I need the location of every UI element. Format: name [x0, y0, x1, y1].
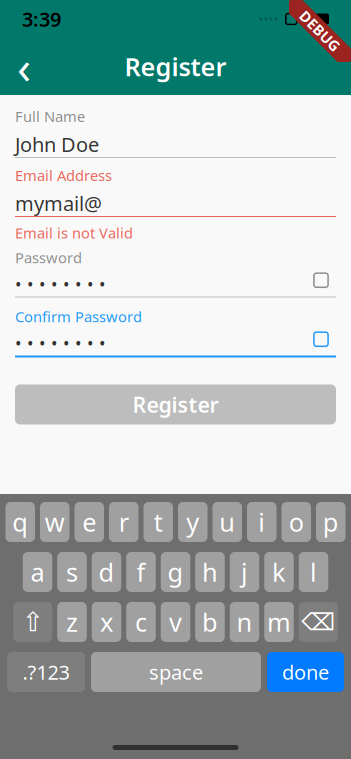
staticText: ⇧ — [22, 607, 44, 637]
staticText: x — [100, 605, 113, 639]
button[interactable]: ⌫ — [299, 602, 338, 642]
button[interactable]: u — [212, 502, 242, 542]
staticText: space — [149, 659, 203, 685]
staticText: i — [258, 505, 265, 539]
staticText: y — [186, 505, 199, 539]
button[interactable]: k — [264, 552, 294, 592]
staticText: b — [202, 605, 218, 639]
button[interactable]: n — [230, 602, 259, 642]
staticText: ‹ — [17, 36, 31, 97]
button[interactable]: m — [264, 602, 294, 642]
button[interactable]: h — [195, 552, 225, 592]
staticText: Full Name — [15, 106, 85, 126]
staticText: r — [119, 505, 129, 539]
staticText: l — [310, 555, 317, 589]
button[interactable]: y — [178, 502, 207, 542]
button[interactable]: e — [74, 502, 104, 542]
button[interactable]: Toggle password visibility — [306, 324, 336, 354]
staticText: Password — [15, 248, 82, 267]
button[interactable]: f — [126, 552, 156, 592]
button[interactable]: i — [247, 502, 276, 542]
staticText: Email is not Valid — [15, 223, 133, 242]
button[interactable]: ⇧ — [13, 602, 52, 642]
staticText: s — [66, 555, 78, 589]
button[interactable]: l — [299, 552, 328, 592]
staticText: w — [45, 505, 65, 539]
staticText: v — [169, 605, 182, 639]
staticText: 3:39 — [22, 6, 61, 32]
button[interactable]: c — [126, 602, 156, 642]
staticText: j — [241, 555, 248, 589]
staticText: DEBUG — [294, 21, 345, 41]
button[interactable]: done — [267, 652, 344, 692]
button[interactable]: w — [40, 502, 69, 542]
button[interactable]: Back — [2, 44, 46, 88]
button[interactable]: v — [161, 602, 190, 642]
button[interactable]: z — [57, 602, 87, 642]
staticText: h — [202, 555, 218, 589]
staticText: o — [289, 505, 304, 539]
button[interactable]: Register — [15, 384, 336, 424]
button[interactable]: p — [316, 502, 345, 542]
staticText: e — [82, 505, 96, 539]
staticText: p — [323, 505, 339, 539]
button[interactable]: Toggle password visibility — [306, 265, 336, 295]
button[interactable]: r — [109, 502, 138, 542]
button[interactable]: b — [195, 602, 225, 642]
staticText: c — [135, 605, 147, 639]
staticText: g — [167, 555, 183, 589]
staticText: t — [154, 505, 163, 539]
button[interactable]: d — [92, 552, 121, 592]
staticText: Confirm Password — [15, 307, 142, 326]
button[interactable]: a — [23, 552, 52, 592]
button[interactable]: t — [143, 502, 173, 542]
staticText: a — [30, 555, 44, 589]
staticText: Register — [132, 390, 218, 419]
staticText: z — [66, 605, 78, 639]
button[interactable]: g — [161, 552, 190, 592]
staticText: m — [267, 605, 291, 639]
staticText: Register — [124, 50, 226, 83]
button[interactable]: j — [230, 552, 259, 592]
staticText: Email Address — [15, 165, 112, 185]
button[interactable]: .?123 — [7, 652, 85, 692]
staticText: f — [136, 555, 145, 589]
staticText: ⌫ — [301, 608, 335, 636]
staticText: .?123 — [22, 659, 69, 685]
button[interactable]: q — [5, 502, 35, 542]
button[interactable]: space — [91, 652, 261, 692]
staticText: n — [236, 605, 252, 639]
staticText: d — [98, 555, 114, 589]
staticText: • • • • • • • • — [15, 331, 106, 354]
button[interactable]: s — [57, 552, 87, 592]
staticText: u — [219, 505, 235, 539]
staticText: q — [12, 505, 28, 539]
staticText: John Doe — [15, 131, 99, 158]
staticText: • • • • • • • • — [15, 272, 106, 295]
button[interactable]: x — [92, 602, 121, 642]
staticText: k — [272, 555, 286, 589]
button[interactable]: o — [281, 502, 311, 542]
staticText: done — [282, 659, 329, 685]
staticText: mymail@ — [15, 190, 102, 217]
